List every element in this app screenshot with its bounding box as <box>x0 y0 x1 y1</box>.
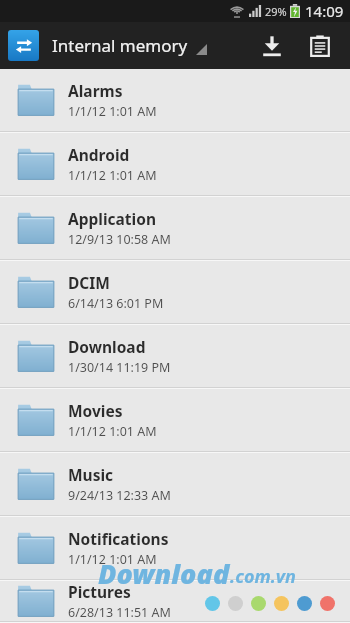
staticText: 12/9/13 10:58 AM <box>68 231 171 248</box>
staticText: 6/28/13 11:51 AM <box>68 604 171 621</box>
staticText: Download <box>98 555 230 592</box>
button[interactable]: Clipboard <box>300 26 340 66</box>
button[interactable]: Music <box>0 453 350 517</box>
staticText: Pictures <box>68 581 131 602</box>
staticText: Alarms <box>68 80 123 101</box>
staticText: Movies <box>68 400 123 421</box>
button[interactable]: Download <box>252 26 292 66</box>
staticText: Android <box>68 144 130 165</box>
button[interactable]: Download <box>0 325 350 389</box>
staticText: DCIM <box>68 272 110 293</box>
staticText: 1/30/14 11:19 PM <box>68 359 171 376</box>
button[interactable]: DCIM <box>0 261 350 325</box>
staticText: 9/24/13 12:33 AM <box>68 487 171 504</box>
staticText: Notifications <box>68 528 169 549</box>
staticText: Music <box>68 464 114 485</box>
button[interactable]: Application <box>0 197 350 261</box>
button[interactable]: Android <box>0 133 350 197</box>
staticText: .com.vn <box>230 564 296 589</box>
button[interactable]: Movies <box>0 389 350 453</box>
staticText: Download <box>68 336 146 357</box>
staticText: 1/1/12 1:01 AM <box>68 167 157 184</box>
staticText: Internal memory <box>52 34 188 57</box>
button[interactable]: Pictures <box>0 581 350 623</box>
staticText: 14:09 <box>305 1 344 21</box>
staticText: 1/1/12 1:01 AM <box>68 103 157 120</box>
button[interactable]: Notifications <box>0 517 350 581</box>
staticText: 1/1/12 1:01 AM <box>68 423 157 440</box>
button[interactable]: Internal memory <box>52 22 252 69</box>
staticText: Application <box>68 208 156 229</box>
button[interactable]: Transfer <box>8 30 39 61</box>
staticText: 29% <box>265 4 287 19</box>
button[interactable]: Alarms <box>0 69 350 133</box>
staticText: 6/14/13 6:01 PM <box>68 295 164 312</box>
staticText: 1/1/12 1:01 AM <box>68 551 157 568</box>
